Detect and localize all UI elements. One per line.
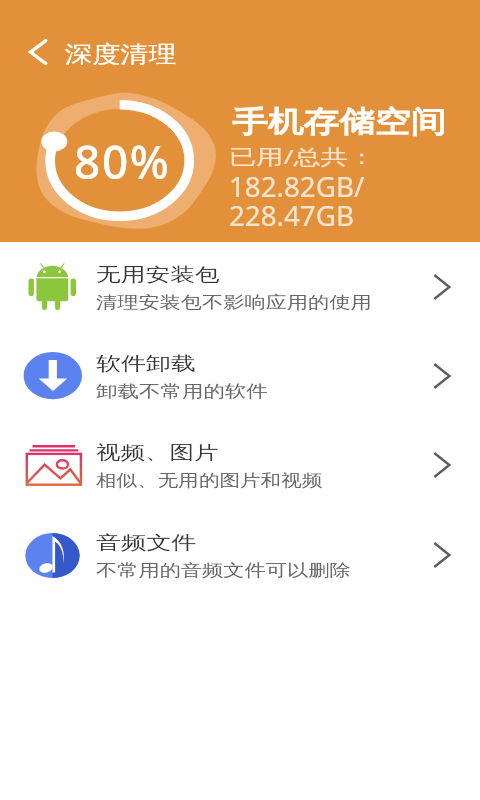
staticText: 无用安装包 <box>96 263 220 286</box>
staticText: 不常用的音频文件可以删除 <box>96 560 351 581</box>
staticText: 深度清理 <box>65 40 177 69</box>
staticText: 228.47GB <box>229 196 355 234</box>
button[interactable]: 无用安装包 <box>0 244 480 333</box>
staticText: 相似、无用的图片和视频 <box>96 470 323 491</box>
staticText: 视频、图片 <box>96 441 218 464</box>
button[interactable]: 软件卸载 <box>0 333 480 422</box>
button[interactable]: 音频文件 <box>0 512 480 601</box>
staticText: 已用/总共： <box>229 143 376 170</box>
staticText: 软件卸载 <box>96 352 196 375</box>
staticText: 80% <box>74 131 171 192</box>
button[interactable]: 视频、图片 <box>0 422 480 511</box>
staticText: 卸载不常用的软件 <box>96 381 269 402</box>
staticText: 音频文件 <box>96 531 197 554</box>
staticText: 182.82GB/ <box>229 167 365 205</box>
staticText: 清理安装包不影响应用的使用 <box>96 292 372 313</box>
button[interactable]: Back <box>12 28 64 80</box>
staticText: 手机存储空间 <box>232 104 446 141</box>
